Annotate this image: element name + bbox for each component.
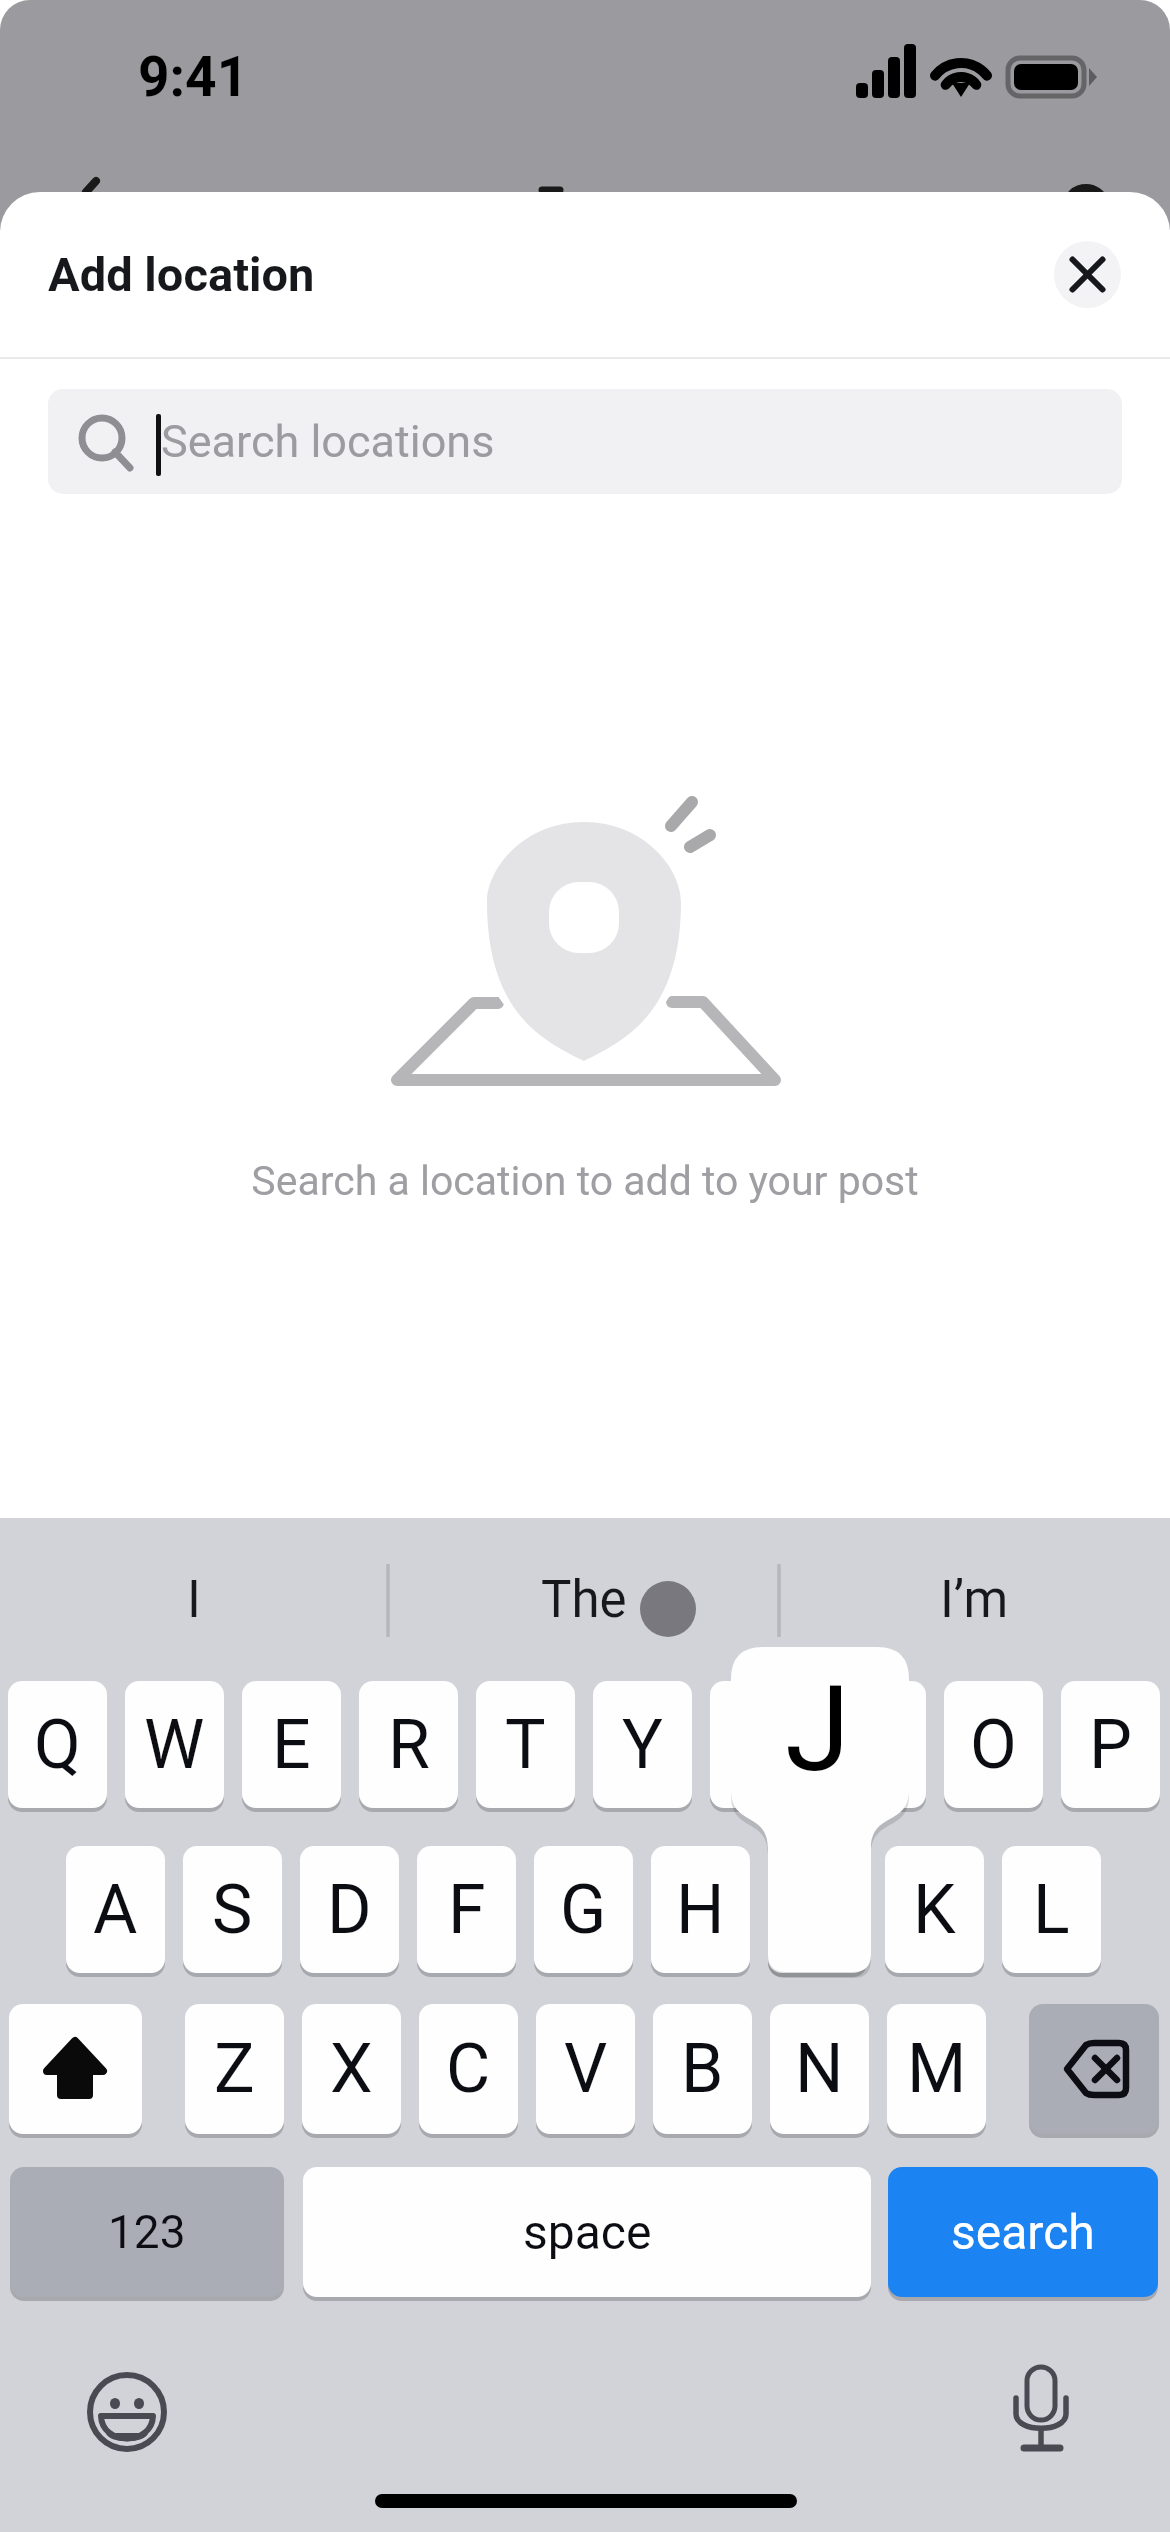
button[interactable]: V bbox=[536, 2004, 635, 2134]
staticText: R bbox=[388, 1705, 430, 1785]
button[interactable]: Dictation bbox=[984, 2360, 1098, 2464]
staticText: Z bbox=[214, 2029, 255, 2109]
button[interactable]: T bbox=[476, 1681, 575, 1808]
button[interactable]: B bbox=[653, 2004, 752, 2134]
staticText: X bbox=[330, 2029, 373, 2109]
button[interactable]: W bbox=[125, 1681, 224, 1808]
button[interactable]: N bbox=[770, 2004, 869, 2134]
staticText: D bbox=[327, 1870, 372, 1950]
staticText: Search a location to add to your post bbox=[0, 1157, 1170, 1205]
button[interactable]: R bbox=[359, 1681, 458, 1808]
staticText: Q bbox=[34, 1705, 81, 1785]
button[interactable]: C bbox=[419, 2004, 518, 2134]
button[interactable]: G bbox=[534, 1846, 633, 1973]
button[interactable]: I’m bbox=[779, 1518, 1170, 1681]
staticText: K bbox=[913, 1870, 956, 1950]
button[interactable]: A bbox=[66, 1846, 165, 1973]
button[interactable]: Search locations bbox=[48, 389, 1122, 494]
staticText: search bbox=[951, 2204, 1095, 2260]
button[interactable]: L bbox=[1002, 1846, 1101, 1973]
button[interactable]: 123 bbox=[10, 2167, 284, 2297]
staticText: W bbox=[144, 1705, 205, 1785]
staticText: Y bbox=[622, 1705, 663, 1785]
button[interactable]: Backspace bbox=[1029, 2004, 1159, 2134]
staticText: Search locations bbox=[161, 415, 495, 468]
staticText: P bbox=[1089, 1705, 1132, 1785]
button[interactable]: E bbox=[242, 1681, 341, 1808]
staticText: Add location bbox=[48, 247, 315, 302]
button[interactable]: J bbox=[768, 1846, 867, 1973]
staticText: V bbox=[564, 2029, 608, 2109]
button[interactable]: S bbox=[183, 1846, 282, 1973]
button[interactable]: P bbox=[1061, 1681, 1160, 1808]
staticText: 9:41 bbox=[138, 45, 249, 109]
button[interactable]: F bbox=[417, 1846, 516, 1973]
staticText: T bbox=[505, 1705, 546, 1785]
button[interactable]: I bbox=[0, 1518, 388, 1681]
button[interactable]: The bbox=[388, 1518, 779, 1681]
button[interactable]: H bbox=[651, 1846, 750, 1973]
button[interactable]: Emoji keyboard bbox=[70, 2360, 184, 2464]
staticText: E bbox=[272, 1705, 311, 1785]
button[interactable]: Shift bbox=[9, 2004, 142, 2134]
button[interactable]: J key bbox=[731, 1647, 909, 1806]
staticText: A bbox=[93, 1870, 138, 1950]
staticText: I’m bbox=[940, 1570, 1009, 1630]
button[interactable]: Y bbox=[593, 1681, 692, 1808]
staticText: O bbox=[970, 1705, 1017, 1785]
button[interactable]: K bbox=[885, 1846, 984, 1973]
staticText: space bbox=[523, 2204, 652, 2260]
button[interactable]: search bbox=[888, 2167, 1158, 2297]
staticText: J bbox=[785, 1661, 851, 1799]
staticText: G bbox=[560, 1870, 607, 1950]
button[interactable]: Z bbox=[185, 2004, 284, 2134]
staticText: F bbox=[448, 1870, 486, 1950]
button[interactable]: M bbox=[887, 2004, 986, 2134]
button[interactable]: O bbox=[944, 1681, 1043, 1808]
button[interactable]: Close bbox=[1054, 241, 1121, 308]
button[interactable]: D bbox=[300, 1846, 399, 1973]
staticText: S bbox=[212, 1870, 253, 1950]
button[interactable]: U bbox=[710, 1681, 809, 1808]
staticText: C bbox=[446, 2029, 491, 2109]
button[interactable]: space bbox=[303, 2167, 871, 2297]
button[interactable]: I bbox=[827, 1681, 926, 1808]
staticText: 123 bbox=[108, 2205, 186, 2259]
staticText: I bbox=[187, 1570, 201, 1630]
staticText: B bbox=[681, 2029, 724, 2109]
staticText: M bbox=[907, 2029, 967, 2109]
staticText: N bbox=[795, 2029, 844, 2109]
staticText: The bbox=[541, 1570, 627, 1630]
staticText: H bbox=[676, 1870, 725, 1950]
button[interactable]: X bbox=[302, 2004, 401, 2134]
button[interactable]: Q bbox=[8, 1681, 107, 1808]
staticText: L bbox=[1033, 1870, 1070, 1950]
